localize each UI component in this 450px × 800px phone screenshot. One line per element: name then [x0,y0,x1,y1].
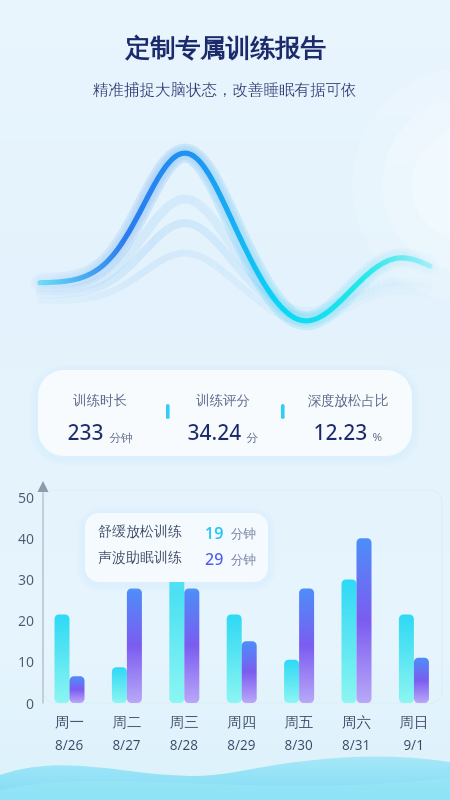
button[interactable]: 训练明细提示 [85,513,268,582]
button[interactable]: 训练统计卡片 [38,370,412,456]
